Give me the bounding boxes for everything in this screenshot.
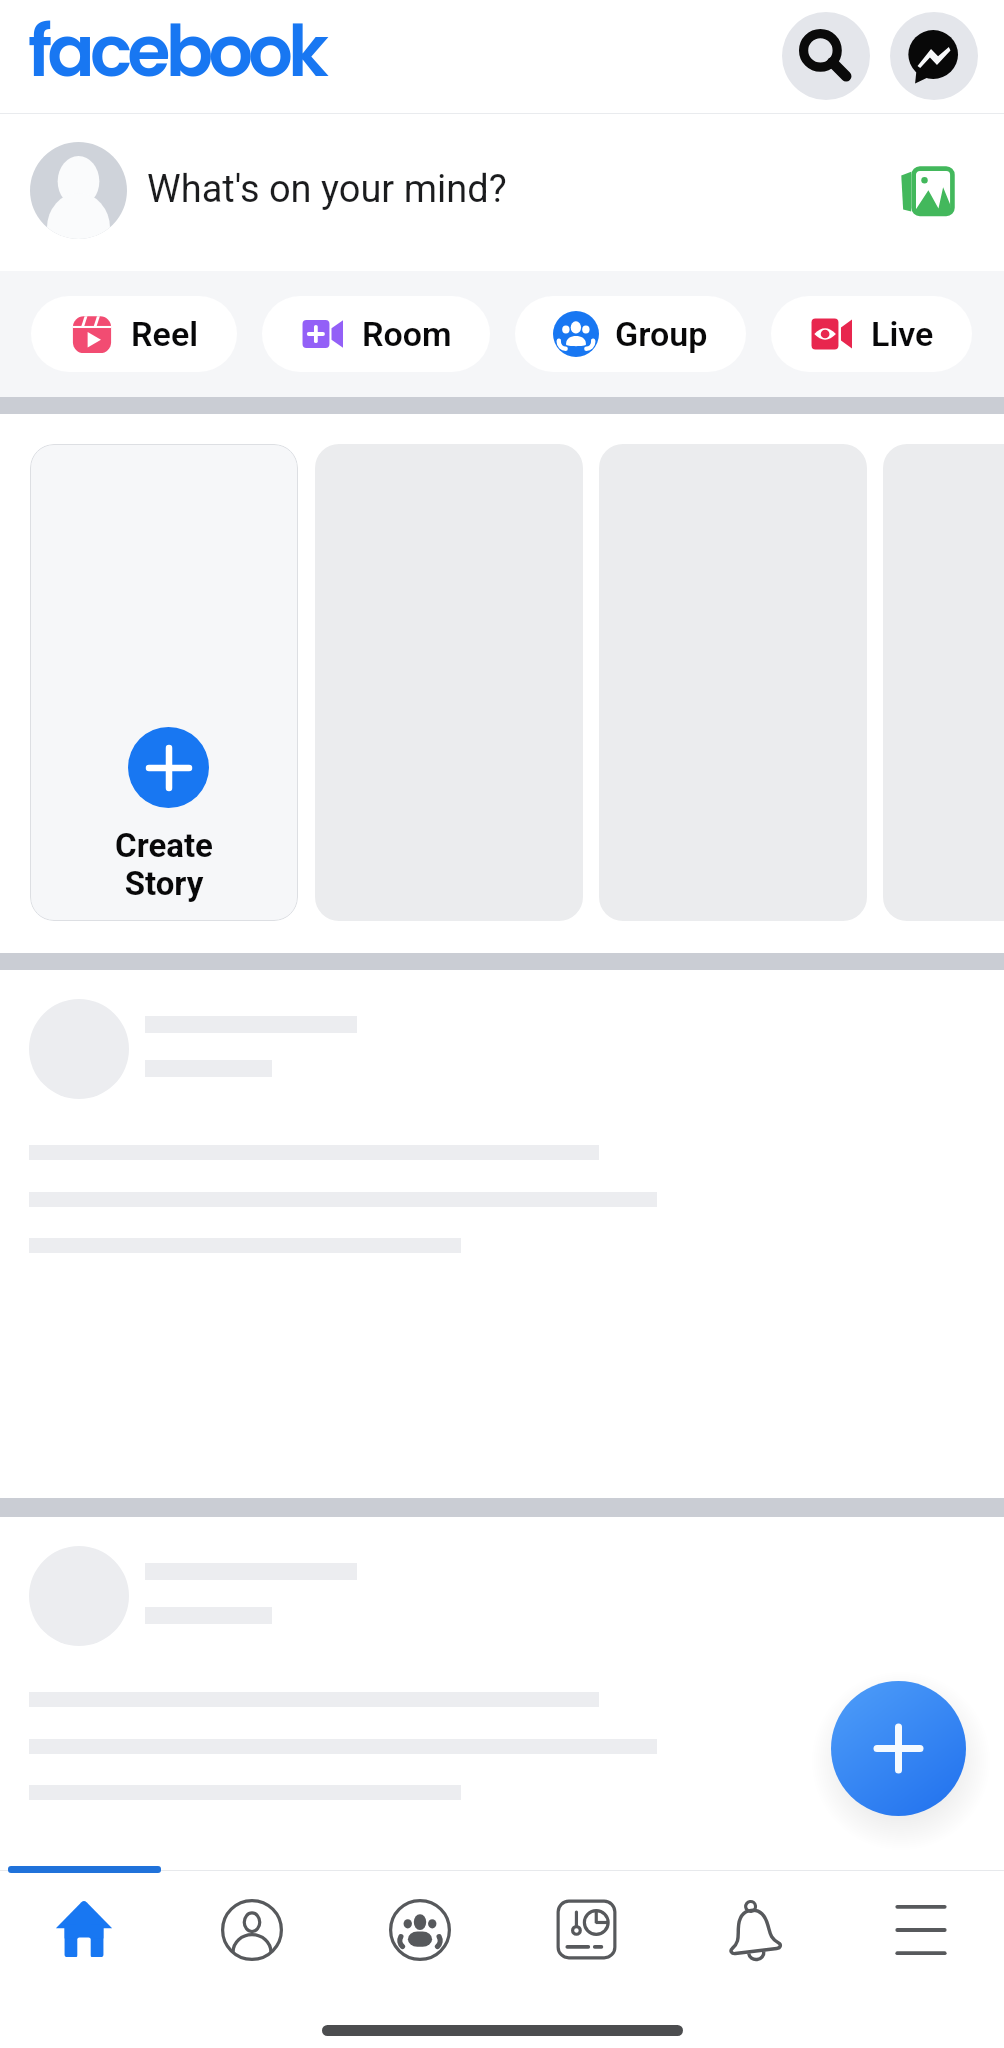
button[interactable]: Search	[782, 12, 870, 100]
button[interactable]: Notifications	[670, 1873, 837, 1986]
staticText: What's on your mind?	[147, 167, 507, 212]
button[interactable]: What's on your mind?	[147, 114, 707, 264]
button[interactable]: Menu	[837, 1873, 1004, 1986]
button[interactable]: Messenger	[890, 12, 978, 100]
button[interactable]: Live	[771, 296, 972, 372]
button[interactable]: Create Story	[30, 444, 298, 921]
button[interactable]: Profile	[168, 1873, 336, 1986]
button[interactable]: Room	[262, 296, 490, 372]
staticText: Reel	[131, 314, 199, 354]
button[interactable]: Create post	[831, 1681, 966, 1816]
button[interactable]: Groups	[336, 1873, 503, 1986]
button[interactable]: Reel	[31, 296, 237, 372]
button[interactable]: Group	[515, 296, 746, 372]
staticText: Create Story	[30, 826, 298, 903]
staticText: facebook	[28, 2, 325, 100]
staticText: Group	[615, 314, 708, 354]
button[interactable]: Photo	[884, 147, 970, 233]
button[interactable]: News	[503, 1873, 670, 1986]
button[interactable]: Home	[0, 1873, 168, 1986]
staticText: Live	[871, 314, 934, 354]
staticText: Room	[362, 314, 452, 354]
